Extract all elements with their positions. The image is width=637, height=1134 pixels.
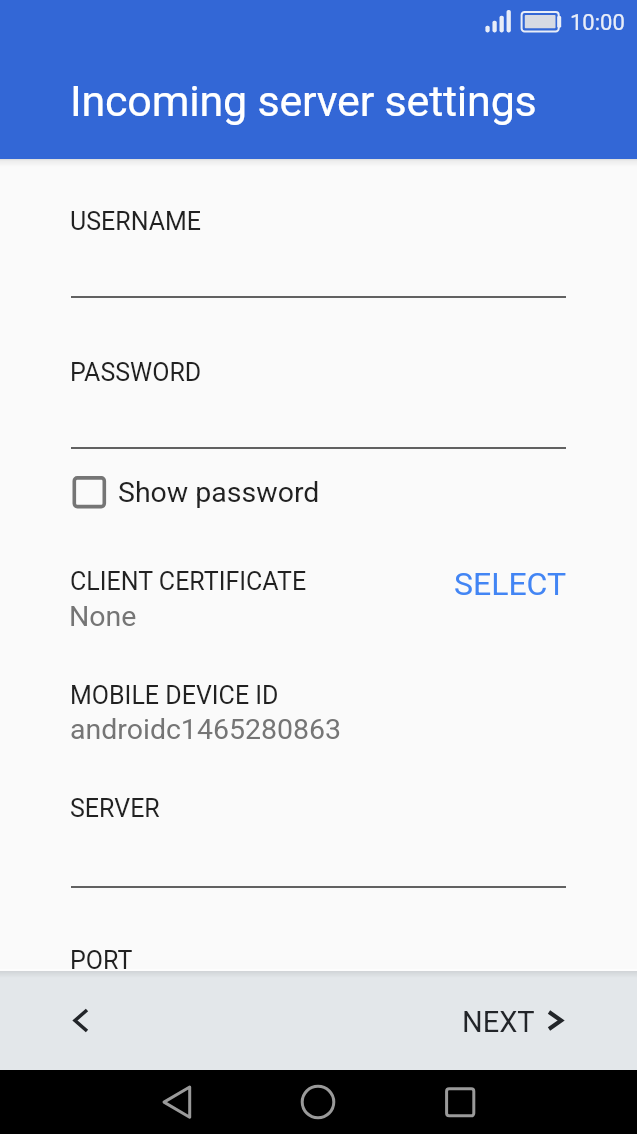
button[interactable]: USERNAME — [62, 196, 576, 304]
staticText: None — [69, 600, 137, 633]
button[interactable]: NEXT — [447, 993, 581, 1049]
button[interactable]: Show password — [62, 466, 332, 518]
staticText: USERNAME — [70, 207, 202, 236]
button[interactable]: SERVER — [62, 786, 576, 894]
staticText: CLIENT CERTIFICATE — [70, 567, 307, 596]
staticText: NEXT — [462, 1005, 535, 1039]
staticText: SERVER — [70, 794, 160, 823]
button[interactable]: Back — [152, 1078, 200, 1126]
button[interactable]: Previous — [56, 996, 106, 1046]
staticText: PASSWORD — [70, 358, 202, 387]
staticText: MOBILE DEVICE ID — [70, 681, 279, 710]
staticText: Incoming server settings — [70, 76, 537, 126]
button[interactable]: CLIENT CERTIFICATE — [62, 556, 422, 636]
staticText: PORT — [70, 946, 133, 975]
staticText: androidc1465280863 — [70, 713, 342, 746]
button[interactable]: Home — [294, 1078, 342, 1126]
button[interactable]: PORT — [62, 938, 576, 971]
staticText: SELECT — [454, 565, 567, 603]
button[interactable]: PASSWORD — [62, 347, 576, 455]
button[interactable]: MOBILE DEVICE ID — [62, 670, 576, 748]
button[interactable]: Recent apps — [436, 1078, 484, 1126]
staticText: Show password — [118, 476, 320, 509]
staticText: 10:00 — [570, 10, 625, 36]
button[interactable]: SELECT — [437, 553, 567, 609]
